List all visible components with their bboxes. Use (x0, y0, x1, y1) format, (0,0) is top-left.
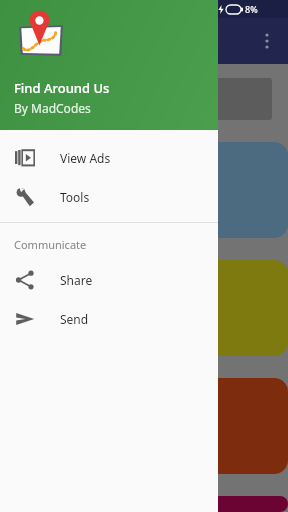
staticText: 7:53 PM (4, 3, 38, 15)
staticText: Share (60, 272, 93, 288)
button[interactable]: More options (252, 26, 282, 56)
button[interactable]: Tools (0, 177, 218, 216)
button[interactable]: AMBULANCE (24, 142, 288, 238)
button[interactable]: Send (0, 299, 218, 338)
staticText: Communicate (14, 237, 87, 252)
button[interactable]: Find Around Us (0, 0, 218, 130)
button[interactable] (24, 496, 288, 512)
staticText: By MadCodes (14, 100, 91, 116)
staticText: View Ads (60, 150, 111, 166)
button[interactable]: BANKS (24, 260, 288, 356)
button[interactable]: FIND (24, 78, 272, 120)
staticText: Tools (60, 189, 90, 205)
staticText: Send (60, 311, 89, 327)
button[interactable]: View Ads (0, 138, 218, 177)
staticText: Find Around Us (14, 79, 110, 97)
staticText: 8% (245, 3, 258, 15)
button[interactable]: Share (0, 260, 218, 299)
button[interactable]: ATMS (24, 378, 288, 474)
